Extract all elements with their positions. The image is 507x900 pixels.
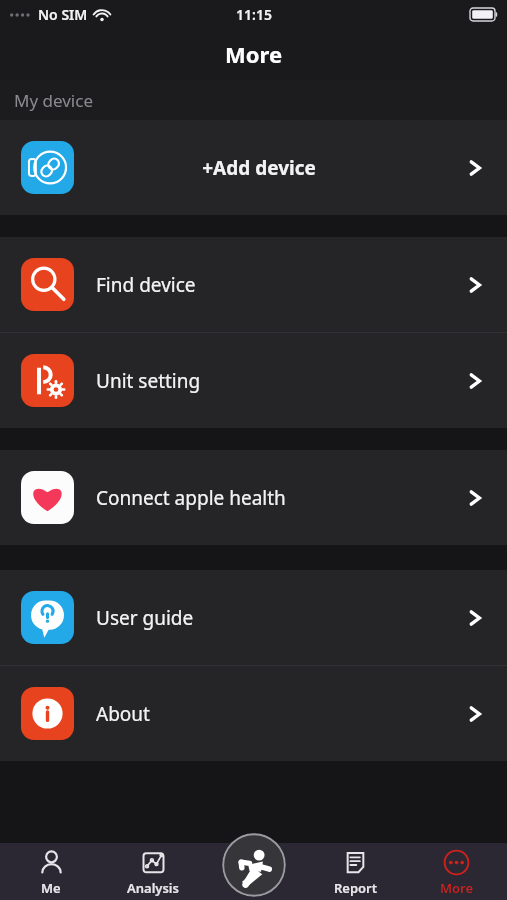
button[interactable]: Analysis bbox=[102, 846, 204, 897]
staticText: +Add device bbox=[202, 155, 316, 181]
button[interactable]: User guide bbox=[0, 570, 507, 665]
staticText: More bbox=[440, 879, 474, 897]
staticText: No SIM bbox=[38, 5, 88, 24]
staticText: Connect apple health bbox=[96, 485, 286, 511]
button[interactable]: +Add device bbox=[0, 120, 507, 215]
staticText: More bbox=[225, 39, 283, 69]
button[interactable]: Unit setting bbox=[0, 333, 507, 428]
staticText: User guide bbox=[96, 605, 194, 631]
staticText: Unit setting bbox=[96, 368, 201, 394]
staticText: Find device bbox=[96, 272, 196, 298]
staticText: About bbox=[96, 701, 150, 727]
staticText: Report bbox=[334, 879, 378, 897]
button[interactable]: Me bbox=[0, 846, 102, 897]
staticText: My device bbox=[14, 89, 93, 112]
staticText: Analysis bbox=[127, 879, 179, 897]
button[interactable]: Start workout bbox=[222, 833, 286, 897]
button[interactable]: Connect apple health bbox=[0, 450, 507, 545]
staticText: 11:15 bbox=[236, 5, 272, 24]
button[interactable]: Report bbox=[305, 846, 406, 897]
button[interactable]: Find device bbox=[0, 237, 507, 332]
button[interactable]: About bbox=[0, 666, 507, 761]
staticText: Me bbox=[41, 879, 61, 897]
button[interactable]: More bbox=[406, 846, 507, 897]
